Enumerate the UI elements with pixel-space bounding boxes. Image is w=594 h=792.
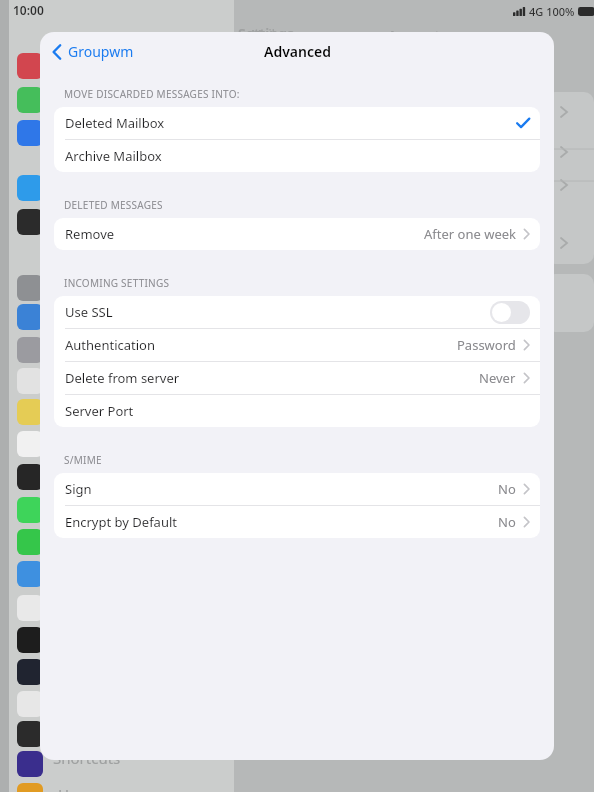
staticText: No: [498, 480, 516, 498]
staticText: Sign: [65, 480, 92, 498]
staticText: 4G 100%: [529, 4, 575, 19]
staticText: Authentication: [65, 336, 155, 354]
staticText: 10:00: [13, 2, 44, 18]
button[interactable]: Deleted Mailbox: [54, 107, 540, 139]
staticText: Deleted Mailbox: [65, 114, 165, 132]
staticText: Mail: [251, 26, 275, 42]
button[interactable]: Groupwm: [48, 37, 138, 66]
button[interactable]: Use SSL: [54, 296, 540, 328]
staticText: Remove: [65, 225, 115, 243]
staticText: Server Port: [65, 402, 134, 420]
staticText: S/MIME: [64, 453, 102, 467]
staticText: INCOMING SETTINGS: [64, 276, 170, 290]
staticText: Accounts: [388, 26, 447, 44]
button[interactable]: Authentication: [54, 329, 540, 361]
staticText: Home: [58, 784, 101, 792]
button[interactable]: Remove: [54, 218, 540, 250]
staticText: Password: [457, 336, 516, 354]
button[interactable]: Sign: [54, 473, 540, 505]
button[interactable]: Server Port: [54, 395, 540, 427]
staticText: No: [498, 513, 516, 531]
staticText: Settings: [238, 24, 294, 43]
staticText: Groupwm: [68, 42, 134, 61]
button[interactable]: Use SSL, off: [490, 301, 530, 324]
staticText: After one week: [424, 225, 516, 243]
staticText: Advanced: [264, 42, 331, 61]
staticText: Delete from server: [65, 369, 180, 387]
staticText: Never: [479, 369, 516, 387]
staticText: Archive Mailbox: [65, 147, 162, 165]
button[interactable]: Encrypt by Default: [54, 506, 540, 538]
button[interactable]: Delete from server: [54, 362, 540, 394]
staticText: Use SSL: [65, 303, 113, 321]
staticText: Shortcuts: [53, 748, 121, 768]
staticText: MOVE DISCARDED MESSAGES INTO:: [64, 87, 240, 101]
staticText: DELETED MESSAGES: [64, 198, 163, 212]
button[interactable]: Archive Mailbox: [54, 140, 540, 172]
staticText: Encrypt by Default: [65, 513, 177, 531]
